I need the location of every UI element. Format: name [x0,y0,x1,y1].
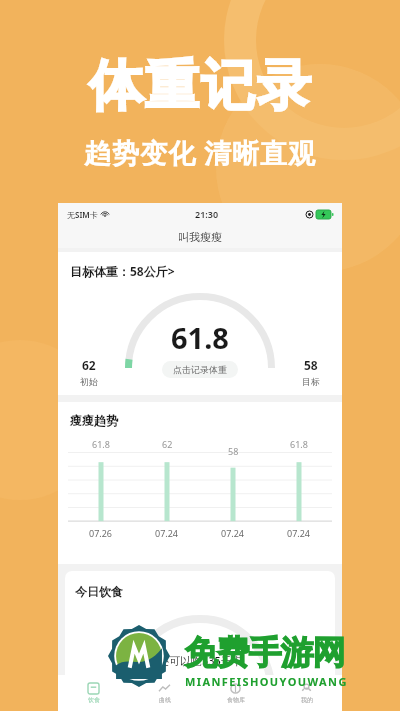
staticText: 瘦瘦趋势 [70,413,118,428]
staticText: 58 [304,357,318,373]
staticText: MIANFEISHOUYOUWANG [185,674,348,689]
staticText: 61.8 [171,318,229,357]
staticText: 今日饮食 [75,584,123,599]
staticText: 还可以吃535千卡 [158,653,243,668]
staticText: 叫我瘦瘦 [178,230,222,244]
staticText: 初始 [80,376,98,387]
staticText: 目标体重：58公斤> [70,263,175,279]
button[interactable]: 点击记录体重 [162,361,238,378]
staticText: 免费手游网 [185,632,345,674]
staticText: 07.24 [221,527,245,539]
staticText: 58 [228,445,239,457]
staticText: 21:30 [195,208,219,220]
button[interactable]: 饮食 [58,675,129,711]
staticText: 07.26 [89,527,113,539]
staticText: 我的 [301,696,313,704]
staticText: 61.8 [92,438,110,450]
staticText: 07.24 [287,527,311,539]
button[interactable]: 目标体重：58公斤> [58,263,342,279]
button[interactable]: 曲线 [129,675,200,711]
staticText: 趋势变化 清晰直观 [84,134,317,171]
button[interactable]: 我的 [271,675,342,711]
staticText: 07.24 [155,527,179,539]
staticText: 62 [82,357,96,373]
staticText: 无SIM卡 [67,209,98,220]
staticText: 点击记录体重 [173,364,227,375]
staticText: 61.8 [290,438,308,450]
staticText: 目标 [302,376,320,387]
staticText: 饮食 [88,696,100,704]
staticText: 62 [162,438,173,450]
button[interactable]: 食物库 [200,675,271,711]
staticText: 食物库 [227,696,245,704]
staticText: 曲线 [159,696,171,704]
staticText: 体重记录 [88,52,312,120]
